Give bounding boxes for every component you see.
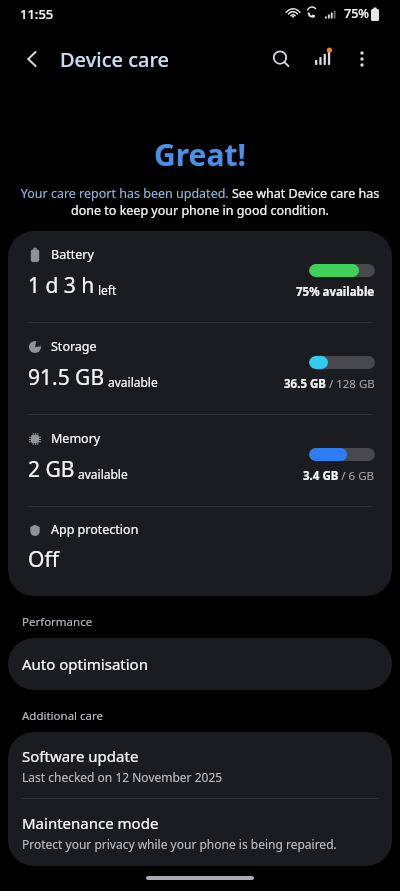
staticText: 75% [344,5,369,22]
staticText: Protect your privacy while your phone is… [22,836,337,852]
staticText: 1 d 3 h [28,271,95,300]
staticText: Battery [51,246,94,263]
staticText: 75% available [296,284,375,300]
staticText: 11:55 [20,5,54,23]
staticText: Additional care [22,708,104,724]
staticText: left [98,282,117,298]
staticText: Last checked on 12 November 2025 [22,769,223,785]
staticText: 3.4 GB / 6 GB [303,468,375,484]
button[interactable]: Maintenance mode [8,799,392,866]
staticText: Your care report has been updated. See w… [18,185,382,219]
staticText: Maintenance mode [22,813,159,833]
staticText: available [78,466,128,482]
button[interactable]: Storage [8,323,392,414]
button[interactable]: Usage statistics [306,43,338,75]
staticText: 36.5 GB / 128 GB [284,376,375,392]
button[interactable]: App protection [8,507,392,596]
staticText: 2 GB [28,455,75,484]
staticText: App protection [51,521,139,538]
button[interactable]: Memory [8,415,392,506]
staticText: Performance [22,614,93,630]
staticText: available [108,374,158,390]
staticText: Memory [51,430,101,447]
staticText: Device care [60,46,169,73]
staticText: 91.5 GB [28,363,105,392]
staticText: Storage [51,338,97,355]
staticText: Off [28,545,59,574]
staticText: Great! [154,134,246,175]
button[interactable]: Search [265,43,297,75]
button[interactable]: Back [16,43,48,75]
button[interactable]: Auto optimisation [8,638,392,690]
button[interactable]: Software update [8,732,392,798]
staticText: Auto optimisation [22,654,148,674]
button[interactable]: Battery [8,231,392,322]
button[interactable]: More options [346,43,378,75]
staticText: Software update [22,746,139,766]
